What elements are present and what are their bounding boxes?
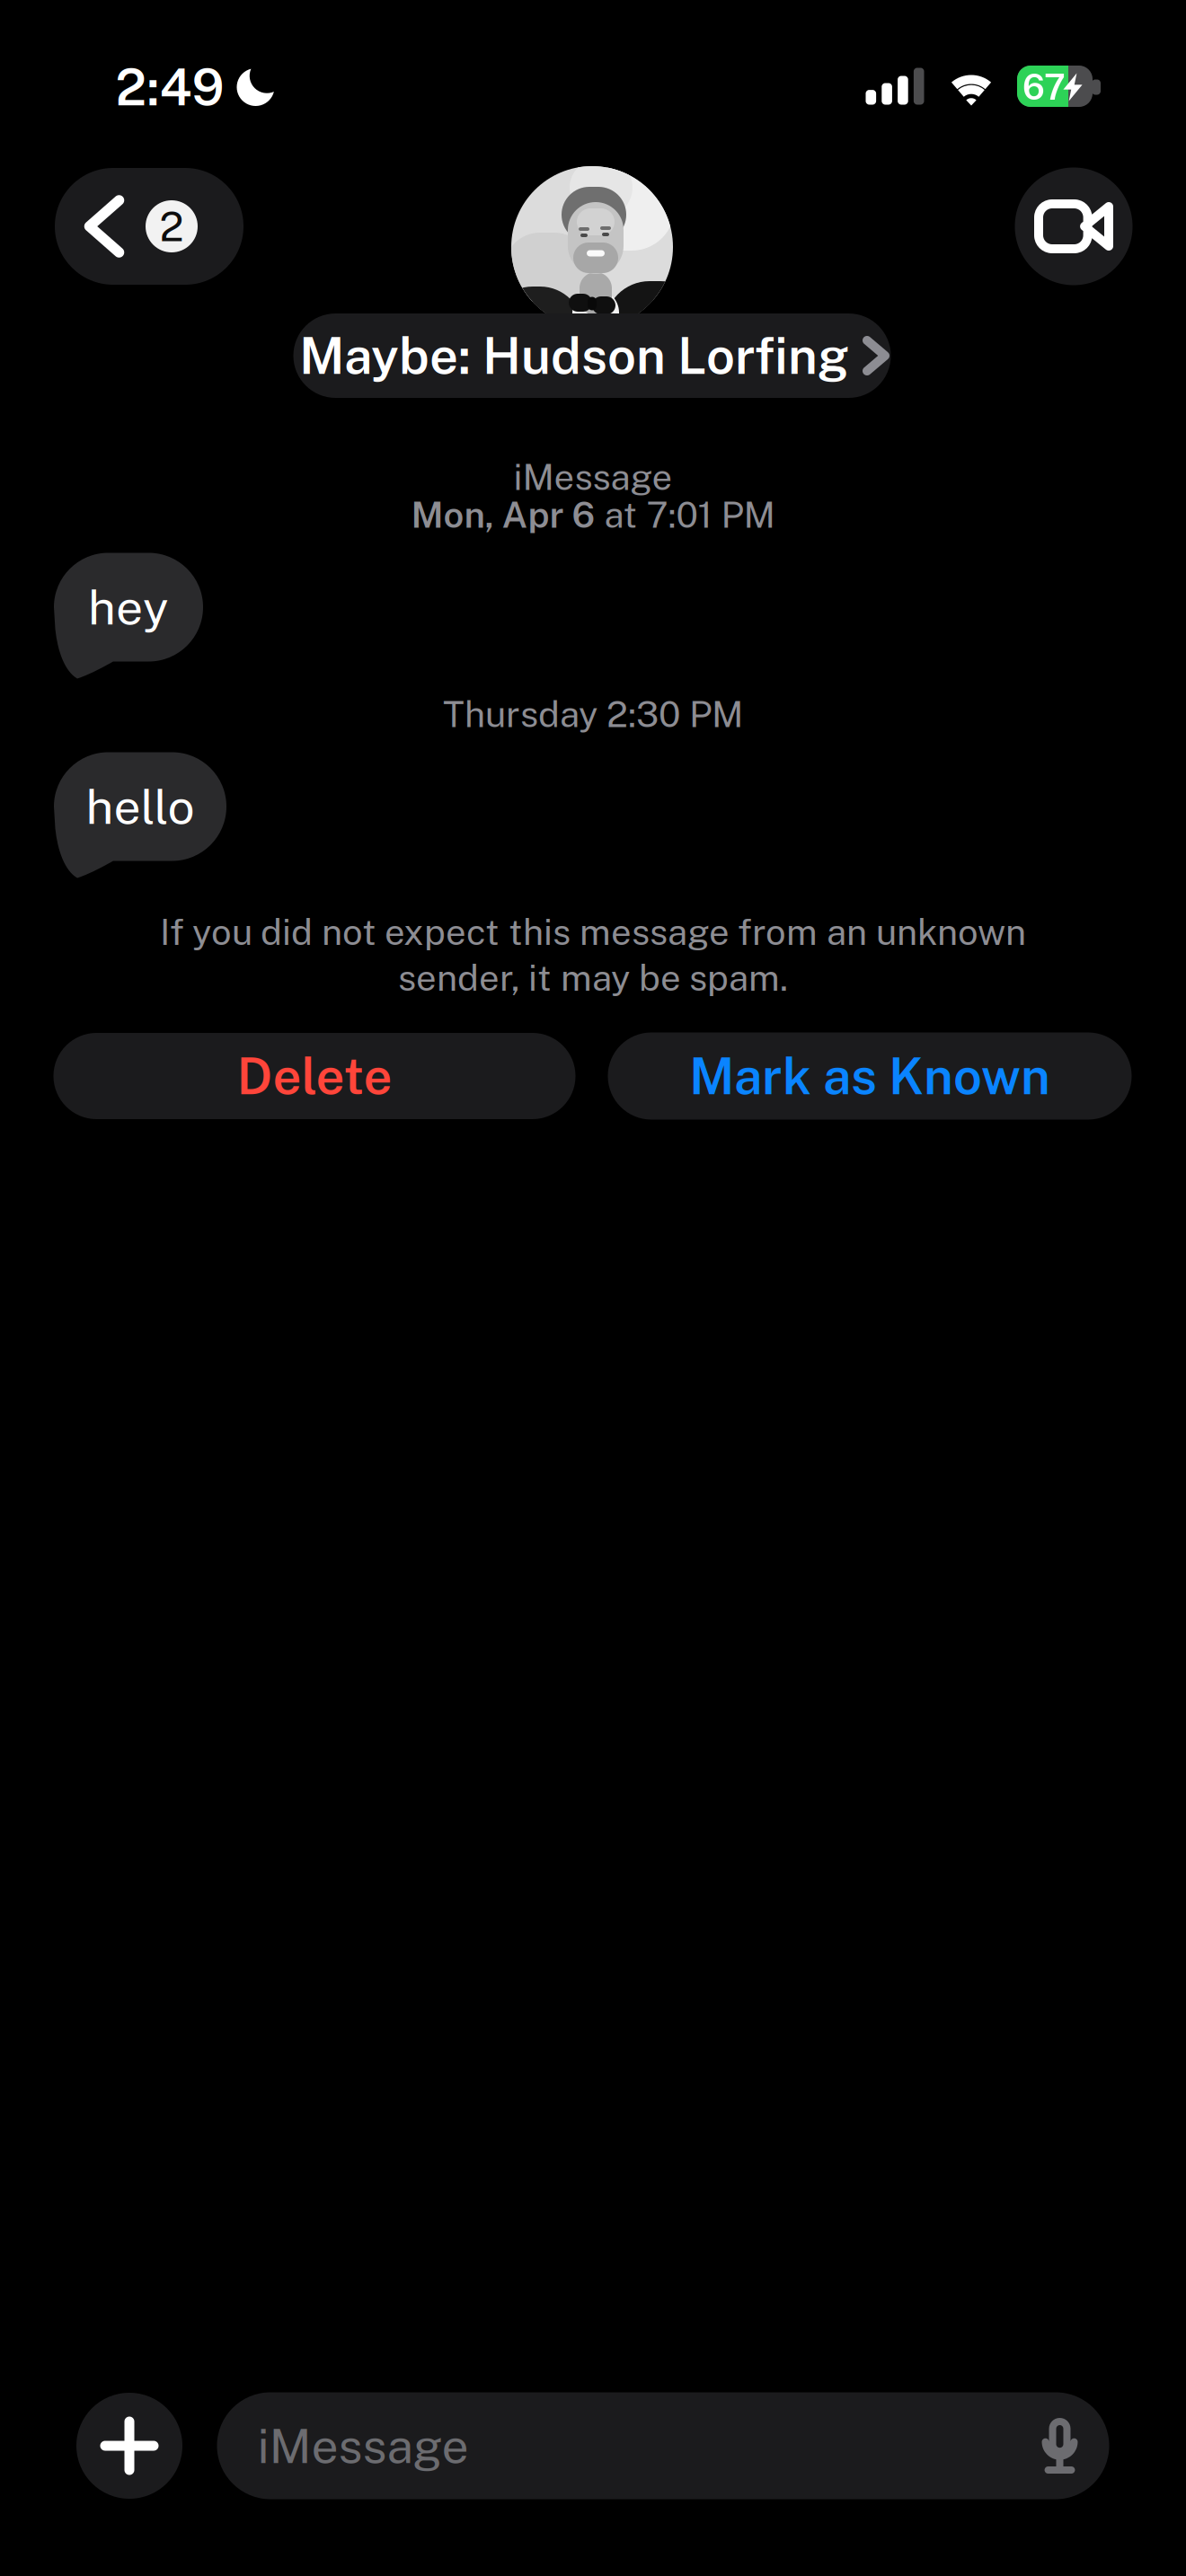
staticText: iMessage bbox=[513, 456, 673, 498]
staticText: Mon, Apr 6 bbox=[411, 494, 595, 536]
staticText: 2 bbox=[159, 202, 184, 250]
staticText: iMessage bbox=[257, 2418, 469, 2474]
staticText: Thursday 2:30 PM bbox=[443, 693, 743, 735]
button[interactable]: Delete bbox=[53, 1033, 575, 1119]
button[interactable]: iMessage bbox=[217, 2392, 1109, 2499]
staticText: If you did not expect this message from … bbox=[160, 911, 1026, 953]
staticText: Maybe: Hudson Lorfing bbox=[299, 326, 849, 385]
button[interactable]: Maybe: Hudson Lorfing bbox=[293, 313, 891, 398]
staticText: hey bbox=[88, 579, 169, 635]
button[interactable]: Back to conversations bbox=[55, 168, 243, 285]
staticText: 2:49 bbox=[115, 58, 224, 117]
staticText: hello bbox=[86, 778, 195, 835]
button[interactable]: Mark as Known bbox=[608, 1032, 1132, 1120]
staticText: Mark as Known bbox=[689, 1046, 1050, 1106]
staticText: 67 bbox=[1022, 67, 1066, 108]
button[interactable]: FaceTime bbox=[1015, 168, 1133, 285]
staticText: at 7:01 PM bbox=[595, 494, 775, 536]
staticText: Delete bbox=[237, 1046, 392, 1106]
staticText: sender, it may be spam. bbox=[398, 957, 788, 999]
button[interactable]: Add attachment bbox=[76, 2393, 182, 2499]
